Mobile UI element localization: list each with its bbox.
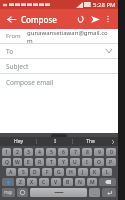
staticText: gunawansetiawan@gmail.com bbox=[27, 29, 112, 43]
button[interactable]: The bbox=[73, 137, 108, 146]
button[interactable]: X bbox=[27, 178, 37, 186]
button[interactable]: Y bbox=[58, 158, 68, 166]
button[interactable]: 5 bbox=[46, 148, 56, 156]
staticText: 4 bbox=[38, 149, 41, 156]
staticText: U bbox=[73, 159, 77, 166]
staticText: 2 bbox=[16, 149, 19, 156]
staticText: 1 bbox=[5, 149, 8, 156]
button[interactable]: P bbox=[106, 158, 116, 166]
button[interactable]: A bbox=[6, 168, 16, 176]
staticText: I bbox=[86, 159, 88, 166]
staticText: P bbox=[109, 159, 113, 166]
button[interactable]: ?1☺ bbox=[2, 188, 15, 197]
staticText: Q bbox=[5, 159, 9, 166]
button[interactable]: 1 bbox=[2, 148, 11, 156]
staticText: F bbox=[46, 169, 49, 176]
staticText: T bbox=[50, 159, 53, 166]
staticText: D bbox=[33, 169, 37, 176]
button[interactable]: C bbox=[39, 178, 49, 186]
button[interactable]: D bbox=[30, 168, 40, 176]
staticText: A bbox=[9, 169, 13, 176]
button[interactable]: Z bbox=[16, 178, 25, 186]
staticText: S bbox=[22, 169, 25, 176]
staticText: C bbox=[42, 179, 46, 186]
staticText: 3 bbox=[27, 149, 30, 156]
button[interactable]: V bbox=[51, 178, 61, 186]
button[interactable]: Emoji bbox=[17, 188, 28, 197]
staticText: 0 bbox=[110, 149, 113, 156]
button[interactable]: F bbox=[42, 168, 52, 176]
button[interactable]: 6 bbox=[58, 148, 68, 156]
staticText: Z bbox=[19, 179, 22, 186]
staticText: J bbox=[82, 169, 84, 176]
button[interactable]: I bbox=[37, 137, 72, 146]
button[interactable]: S bbox=[18, 168, 28, 176]
button[interactable]: Attach file bbox=[74, 12, 88, 26]
button[interactable]: M bbox=[87, 178, 97, 186]
button[interactable]: Subject bbox=[0, 59, 118, 73]
staticText: B bbox=[66, 179, 70, 186]
button[interactable]: 3 bbox=[24, 148, 33, 156]
staticText: ?1☺ bbox=[4, 190, 13, 195]
button[interactable]: K bbox=[90, 168, 100, 176]
button[interactable]: W bbox=[13, 158, 22, 166]
staticText: E bbox=[27, 159, 30, 166]
staticText: Y bbox=[62, 159, 65, 166]
button[interactable]: Space bbox=[30, 188, 87, 197]
staticText: I bbox=[54, 138, 56, 145]
staticText: G bbox=[57, 169, 61, 176]
staticText: N bbox=[78, 179, 82, 186]
staticText: L bbox=[106, 169, 109, 176]
staticText: V bbox=[54, 179, 58, 186]
button[interactable]: 8 bbox=[82, 148, 92, 156]
staticText: O bbox=[97, 159, 101, 166]
button[interactable]: . bbox=[89, 188, 100, 197]
staticText: . bbox=[94, 189, 96, 197]
staticText: 5 bbox=[50, 149, 53, 156]
button[interactable]: More options bbox=[102, 13, 114, 25]
button[interactable]: 4 bbox=[35, 148, 44, 156]
button[interactable]: T bbox=[46, 158, 56, 166]
staticText: 9 bbox=[98, 149, 101, 156]
button[interactable]: O bbox=[94, 158, 104, 166]
staticText: The bbox=[86, 138, 95, 145]
button[interactable]: More suggestions bbox=[108, 137, 118, 146]
staticText: Compose email bbox=[6, 78, 54, 87]
button[interactable]: Enter bbox=[102, 188, 116, 197]
button[interactable]: Q bbox=[2, 158, 11, 166]
staticText: Hey bbox=[14, 138, 23, 145]
staticText: Subject bbox=[6, 62, 29, 71]
button[interactable]: 7 bbox=[70, 148, 80, 156]
button[interactable]: H bbox=[66, 168, 76, 176]
button[interactable]: U bbox=[70, 158, 80, 166]
staticText: K bbox=[93, 169, 97, 176]
button[interactable]: E bbox=[24, 158, 33, 166]
button[interactable]: Backspace bbox=[99, 178, 116, 186]
button[interactable]: 2 bbox=[13, 148, 22, 156]
button[interactable]: 0 bbox=[106, 148, 116, 156]
button[interactable]: Send bbox=[88, 12, 102, 26]
button[interactable]: N bbox=[75, 178, 85, 186]
staticText: M bbox=[90, 179, 95, 186]
button[interactable]: Resize keyboard bbox=[51, 134, 67, 137]
staticText: 7 bbox=[74, 149, 77, 156]
button[interactable]: From bbox=[0, 29, 118, 43]
staticText: 8 bbox=[86, 149, 89, 156]
staticText: X bbox=[30, 179, 34, 186]
button[interactable]: Back bbox=[4, 12, 18, 26]
button[interactable]: Hey bbox=[0, 137, 36, 146]
staticText: To bbox=[6, 47, 14, 56]
button[interactable]: G bbox=[54, 168, 64, 176]
button[interactable]: To bbox=[0, 44, 118, 58]
button[interactable]: B bbox=[63, 178, 73, 186]
button[interactable]: R bbox=[35, 158, 44, 166]
button[interactable]: Compose email bbox=[0, 74, 118, 92]
button[interactable]: I bbox=[82, 158, 92, 166]
button[interactable]: J bbox=[78, 168, 88, 176]
staticText: H bbox=[69, 169, 73, 176]
button[interactable]: L bbox=[102, 168, 112, 176]
button[interactable]: 9 bbox=[94, 148, 104, 156]
staticText: From bbox=[6, 32, 21, 40]
button[interactable]: Shift bbox=[2, 178, 14, 186]
staticText: 6 bbox=[62, 149, 65, 156]
